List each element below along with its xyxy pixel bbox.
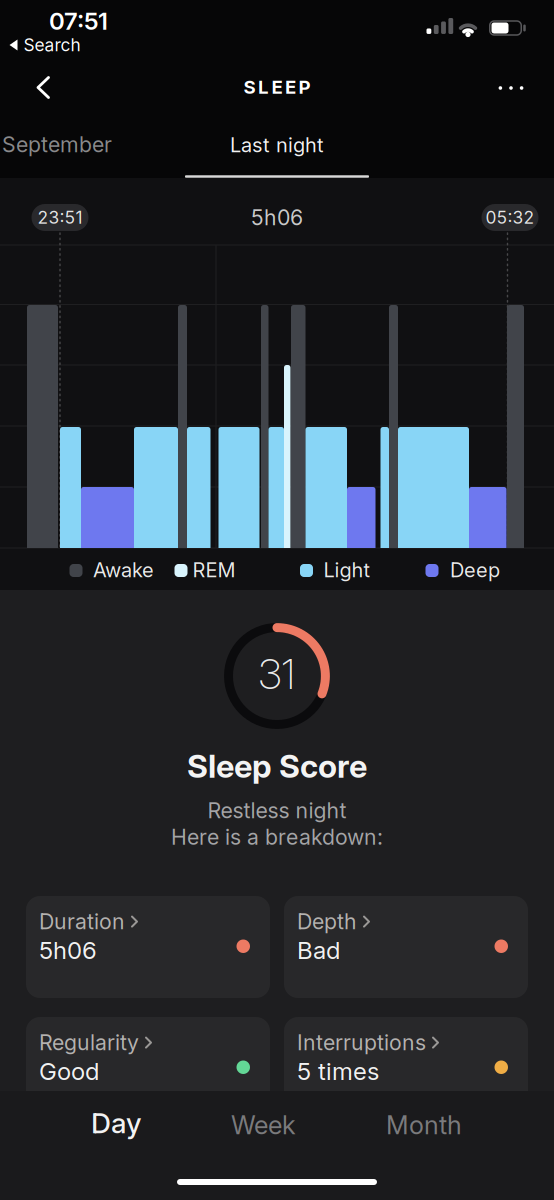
button[interactable]: Interruptions [284,1017,528,1119]
button[interactable]: Day [83,1098,150,1147]
button[interactable]: Week [223,1102,304,1148]
staticText: Duration [39,909,125,934]
staticText: Search [23,35,80,55]
staticText: Restless night [207,798,346,823]
staticText: Week [231,1110,296,1140]
staticText: Month [386,1110,462,1140]
button[interactable]: More [489,76,533,100]
button[interactable]: Duration [26,896,270,998]
staticText: Good [39,1057,99,1085]
staticText: Regularity [39,1030,139,1055]
staticText: Depth [297,909,357,934]
staticText: Deep [450,558,500,582]
button[interactable]: Regularity [26,1017,270,1119]
staticText: September [2,132,112,157]
staticText: Awake [93,558,154,582]
staticText: Here is a breakdown: [171,824,383,850]
staticText: Day [91,1106,142,1139]
staticText: 31 [258,650,295,698]
staticText: 07:51 [49,7,108,35]
button[interactable]: Back [26,66,61,109]
button[interactable]: Back to Search [9,35,80,55]
staticText: SLEEP [243,76,310,98]
staticText: REM [192,558,235,582]
button[interactable]: Last night [230,133,324,157]
staticText: 23:51 [37,207,82,228]
staticText: 05:32 [485,207,534,228]
button[interactable]: September [2,132,112,157]
staticText: 5h06 [39,936,97,964]
staticText: Bad [297,936,340,964]
staticText: 5h06 [251,205,303,230]
staticText: Last night [230,133,324,157]
staticText: 5 times [297,1057,379,1085]
button[interactable]: Depth [284,896,528,998]
staticText: Interruptions [297,1030,426,1055]
staticText: Sleep Score [187,747,367,785]
button[interactable]: Month [378,1102,470,1148]
staticText: Light [323,558,370,582]
